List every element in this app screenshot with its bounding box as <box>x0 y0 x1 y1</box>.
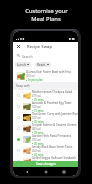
staticText: Lunch <box>17 63 26 67</box>
button[interactable]: Avocado & Poached Egg Toast Stack <box>17 101 78 112</box>
staticText: Meal Plans <box>31 15 61 23</box>
button[interactable]: Teriyaki Salmon & Sesame Greens <box>17 123 78 134</box>
button[interactable]: Mediterranean Chickpea Salad Bowl <box>17 90 78 101</box>
staticText: Reset <box>37 63 46 67</box>
staticText: Save changes <box>36 162 56 166</box>
button[interactable]: Home <box>42 168 50 176</box>
staticText: 20 mins <box>34 142 44 145</box>
staticText: Search <box>22 54 33 58</box>
button[interactable]: Save changes <box>13 161 78 167</box>
staticText: 25 mins <box>34 153 44 156</box>
staticText: 390 cal <box>32 138 41 142</box>
button[interactable]: Back <box>23 168 31 176</box>
staticText: Avocado & Poached Egg Toast Stack <box>32 101 78 105</box>
staticText: 35 mins <box>34 120 44 123</box>
staticText: 520 cal <box>32 116 41 120</box>
button[interactable]: Smoky Black Bean Street Tacos <box>17 145 78 156</box>
staticText: Smoky Black Bean Street Tacos <box>32 145 73 149</box>
staticText: 360 cal <box>32 160 41 164</box>
staticText: Recipe Swap <box>27 44 52 50</box>
staticText: Teriyaki Salmon & Sesame Greens <box>32 123 77 127</box>
button[interactable]: Search <box>17 51 78 60</box>
staticText: 15 mins <box>34 109 44 112</box>
button[interactable]: Recents <box>60 168 68 176</box>
button[interactable]: Grilled Veggie Halloumi Sandwich <box>17 156 78 167</box>
staticText: Thai Green Curry with Jasmine Rice <box>32 112 78 116</box>
button[interactable]: Thai Green Curry with Jasmine Rice <box>17 112 78 123</box>
staticText: 30 mins <box>34 131 44 134</box>
staticText: 330 cal <box>32 105 41 109</box>
staticText: 320 cal <box>26 74 35 78</box>
button[interactable]: Lunch <box>15 62 31 67</box>
button[interactable]: Close <box>13 42 24 51</box>
staticText: Garden Herb Pasta Primavera Salad <box>32 134 78 138</box>
staticText: 18 mins <box>34 164 44 167</box>
staticText: Customise your <box>25 7 68 15</box>
staticText: Swap with <box>16 84 30 88</box>
staticText: Grilled Veggie Halloumi Sandwich <box>32 156 77 160</box>
staticText: Mediterranean Chickpea Salad Bowl <box>32 90 78 94</box>
button[interactable]: Garden Herb Pasta Primavera Salad <box>17 134 78 145</box>
button[interactable]: Quinoa Kale Power Bowl with Feta <box>17 69 78 82</box>
staticText: Quinoa Kale Power Bowl with Feta <box>26 70 71 74</box>
staticText: 480 cal <box>32 127 41 131</box>
staticText: 25 mins <box>34 98 44 101</box>
staticText: In your plan <box>28 78 43 82</box>
staticText: 450 cal <box>32 149 41 153</box>
staticText: 410 cal <box>32 94 41 98</box>
button[interactable]: Reset <box>35 62 51 67</box>
